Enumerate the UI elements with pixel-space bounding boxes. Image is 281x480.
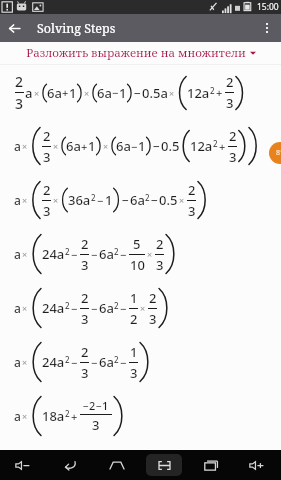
staticText: 2	[81, 289, 89, 307]
staticText: +	[62, 85, 69, 100]
staticText: 2	[210, 85, 215, 96]
staticText: 3	[226, 94, 234, 112]
button[interactable]: a	[0, 389, 281, 443]
staticText: 81	[276, 148, 281, 158]
staticText: 2	[89, 398, 96, 413]
button[interactable]: Volume down	[0, 450, 46, 480]
staticText: −	[97, 193, 104, 208]
button[interactable]: a	[0, 335, 281, 389]
staticText: 12a	[190, 137, 213, 155]
staticText: 2	[43, 181, 51, 199]
staticText: 24a	[42, 299, 65, 317]
staticText: 2	[81, 343, 89, 361]
button[interactable]: 2	[0, 65, 281, 119]
button[interactable]: a	[0, 281, 281, 335]
staticText: 2	[81, 235, 89, 253]
staticText: 2	[226, 73, 234, 91]
staticText: 0.5	[159, 191, 178, 209]
staticText: 3	[188, 202, 196, 220]
staticText: +	[216, 85, 223, 100]
staticText: 6a	[116, 137, 131, 155]
staticText: −	[112, 85, 119, 100]
staticText: 0.5	[161, 137, 180, 155]
staticText: 1	[130, 343, 138, 361]
staticText: a	[14, 300, 21, 316]
staticText: 2	[229, 127, 237, 145]
staticText: 2	[65, 408, 70, 419]
staticText: 1	[69, 84, 77, 102]
staticText: 3	[81, 310, 89, 328]
staticText: 0.5a	[142, 84, 168, 102]
staticText: 1	[119, 84, 127, 102]
staticText: 2	[91, 192, 96, 203]
staticText: a	[14, 354, 21, 370]
button[interactable]: a	[0, 227, 281, 281]
staticText: −	[91, 247, 98, 262]
staticText: 15:00	[257, 1, 279, 13]
staticText: 2	[130, 310, 138, 328]
staticText: ×	[179, 194, 185, 206]
staticText: ×	[22, 194, 28, 206]
staticText: 3	[229, 148, 237, 166]
staticText: a	[14, 408, 21, 424]
staticText: 2	[156, 235, 164, 253]
staticText: −	[151, 192, 158, 208]
button[interactable]: More options	[253, 14, 281, 42]
staticText: 2	[114, 246, 119, 257]
staticText: 1	[88, 137, 96, 155]
staticText: 2	[43, 127, 51, 145]
button[interactable]: Back	[46, 450, 93, 480]
button[interactable]: a	[0, 119, 281, 173]
staticText: 2	[114, 300, 119, 311]
button[interactable]: Hint	[269, 142, 281, 164]
button[interactable]: Разложить выражение на множители	[0, 42, 281, 64]
staticText: 3	[43, 202, 51, 220]
staticText: ×	[22, 410, 28, 422]
staticText: −	[71, 301, 78, 316]
staticText: 6a	[99, 353, 114, 371]
staticText: 3	[130, 364, 138, 382]
staticText: 3	[92, 416, 100, 434]
staticText: +	[81, 139, 88, 154]
staticText: 12a	[187, 84, 210, 102]
staticText: 1	[130, 289, 138, 307]
staticText: 3	[81, 256, 89, 274]
button[interactable]: Back	[0, 14, 28, 42]
button[interactable]: Volume up	[234, 450, 281, 480]
button[interactable]: Toggle fullscreen	[146, 454, 182, 476]
staticText: a	[14, 246, 21, 262]
staticText: −	[91, 355, 98, 370]
staticText: 5	[133, 235, 141, 253]
button[interactable]: a	[0, 173, 281, 227]
staticText: 6a	[66, 137, 81, 155]
staticText: −	[83, 399, 89, 413]
staticText: ×	[22, 248, 28, 260]
staticText: 10	[130, 256, 145, 274]
staticText: −	[122, 192, 129, 208]
staticText: 2	[65, 300, 70, 311]
staticText: 6a	[47, 84, 62, 102]
staticText: ×	[140, 302, 146, 314]
staticText: −	[120, 247, 127, 262]
staticText: 3	[156, 256, 164, 274]
staticText: a	[25, 84, 33, 102]
staticText: ×	[34, 87, 40, 99]
staticText: Разложить выражение на множители	[26, 45, 246, 61]
staticText: 24a	[42, 353, 65, 371]
staticText: ×	[53, 140, 59, 152]
button[interactable]: Recent apps	[187, 450, 234, 480]
staticText: 2	[145, 192, 150, 203]
staticText: 2	[188, 181, 196, 199]
staticText: −	[71, 247, 78, 262]
staticText: −	[96, 399, 102, 413]
staticText: 1	[105, 191, 113, 209]
staticText: a	[14, 138, 21, 154]
staticText: −	[91, 301, 98, 316]
button[interactable]: Home	[93, 450, 140, 480]
staticText: ×	[22, 302, 28, 314]
staticText: 1	[102, 398, 109, 413]
staticText: ×	[169, 87, 175, 99]
staticText: −	[134, 85, 141, 101]
staticText: −	[71, 355, 78, 370]
staticText: ×	[53, 194, 59, 206]
